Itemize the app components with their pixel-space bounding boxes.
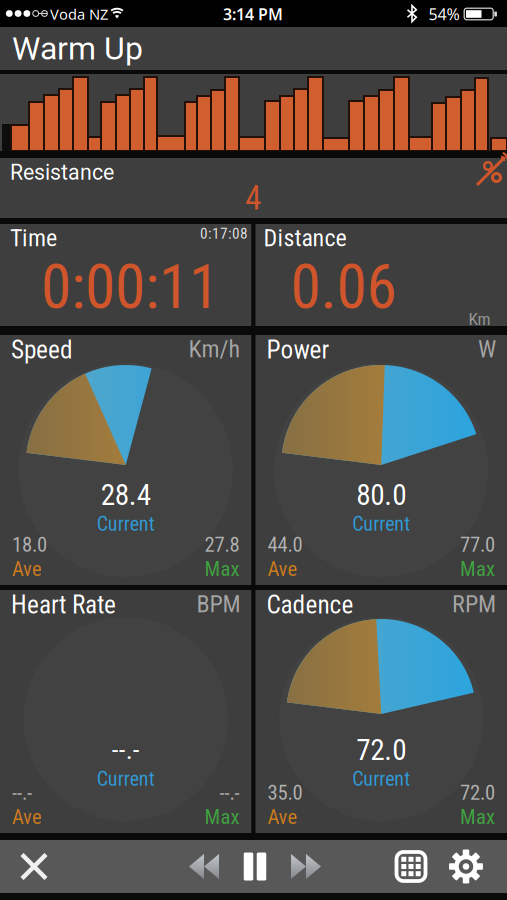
staticText: Current <box>97 767 155 791</box>
staticText: Max <box>204 557 239 581</box>
staticText: Max <box>460 557 495 581</box>
staticText: Current <box>97 512 155 536</box>
staticText: Warm Up <box>12 30 143 67</box>
staticText: W <box>478 335 496 363</box>
staticText: 72.0 <box>460 781 495 805</box>
staticText: 72.0 <box>356 733 406 767</box>
button[interactable]: Stop workout <box>19 851 49 881</box>
staticText: 18.0 <box>12 533 47 557</box>
staticText: Ave <box>267 557 297 581</box>
staticText: Max <box>204 805 239 829</box>
staticText: 0.06 <box>290 251 396 323</box>
staticText: Resistance <box>10 160 114 185</box>
staticText: 27.8 <box>204 533 239 557</box>
staticText: 44.0 <box>267 533 302 557</box>
staticText: Km/h <box>188 335 240 363</box>
staticText: 0:17:08 <box>200 224 248 242</box>
staticText: Current <box>352 767 410 791</box>
staticText: Distance <box>263 224 346 252</box>
staticText: Power <box>266 335 329 365</box>
staticText: Ave <box>12 805 42 829</box>
staticText: Speed <box>11 335 73 365</box>
button[interactable]: Resistance control disconnected <box>477 155 507 187</box>
staticText: Ave <box>12 557 42 581</box>
staticText: --.- <box>12 781 32 805</box>
staticText: Ave <box>267 805 297 829</box>
button[interactable]: Previous segment <box>189 854 219 879</box>
staticText: Current <box>352 512 410 536</box>
button[interactable]: Settings <box>448 849 483 884</box>
staticText: 35.0 <box>267 781 302 805</box>
staticText: Time <box>10 224 57 252</box>
staticText: Max <box>460 805 495 829</box>
button[interactable]: Pause <box>244 852 266 880</box>
staticText: 28.4 <box>101 478 151 512</box>
staticText: RPM <box>452 590 496 618</box>
staticText: 77.0 <box>460 533 495 557</box>
staticText: --.- <box>112 734 140 766</box>
staticText: Km <box>468 309 490 329</box>
staticText: 3:14 PM <box>223 3 283 25</box>
staticText: 80.0 <box>356 478 406 512</box>
staticText: 54% <box>428 3 459 25</box>
staticText: Cadence <box>266 590 353 620</box>
staticText: Voda NZ <box>50 4 108 24</box>
staticText: 0:00:11 <box>41 251 219 323</box>
staticText: --.- <box>219 781 239 805</box>
staticText: 4 <box>245 178 261 218</box>
button[interactable]: Next segment <box>291 854 321 879</box>
staticText: BPM <box>196 590 240 618</box>
staticText: Heart Rate <box>11 590 116 620</box>
button[interactable]: Display grid <box>393 848 429 884</box>
